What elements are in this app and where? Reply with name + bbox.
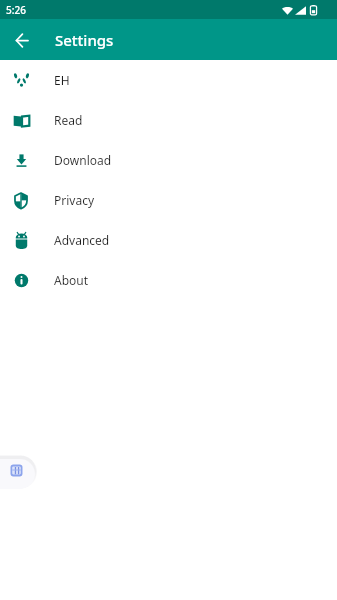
button[interactable]: Back [5,23,39,57]
staticText: Privacy [54,192,95,208]
button[interactable]: About [0,260,337,300]
staticText: Settings [55,30,114,50]
staticText: EH [54,72,70,88]
button[interactable]: Download [0,140,337,180]
staticText: Read [54,112,83,128]
button[interactable]: Privacy [0,180,337,220]
staticText: Download [54,152,112,168]
button[interactable]: EH [0,60,337,100]
button[interactable]: Read [0,100,337,140]
staticText: 5:26 [6,3,26,17]
button[interactable]: Floating shortcut [0,459,35,489]
staticText: Advanced [54,232,110,248]
button[interactable]: Advanced [0,220,337,260]
staticText: About [54,272,89,288]
